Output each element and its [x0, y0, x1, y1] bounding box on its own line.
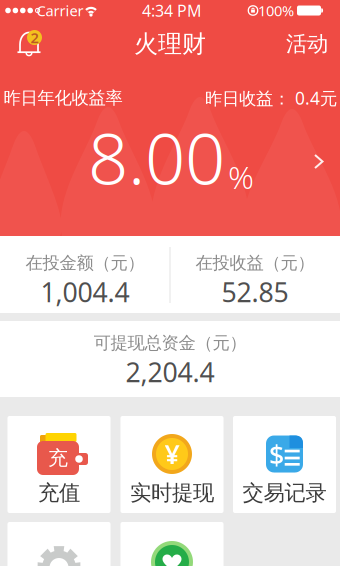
staticText: 2 — [30, 28, 38, 47]
button[interactable]: 设置 — [7, 522, 110, 566]
staticText: 在投收益（元） — [195, 252, 314, 274]
button[interactable]: 充 — [7, 416, 110, 513]
staticText: 实时提现 — [130, 480, 214, 506]
staticText: % — [228, 155, 254, 198]
staticText: 2,204.4 — [125, 354, 214, 390]
staticText: Carrier — [36, 1, 83, 20]
staticText: ¥ — [164, 436, 179, 472]
button[interactable]: 通知 — [5, 24, 49, 60]
button[interactable]: 收益详情 — [0, 113, 340, 203]
staticText: 在投金额（元） — [25, 252, 144, 274]
staticText: 交易记录 — [242, 480, 326, 506]
button[interactable]: 活动 — [282, 29, 332, 59]
staticText: 52.85 — [221, 274, 288, 310]
staticText: 昨日年化收益率 — [3, 87, 122, 109]
staticText: 1,004.4 — [40, 274, 129, 310]
button[interactable]: ¥ — [120, 416, 223, 513]
button[interactable]: $ — [233, 416, 336, 513]
staticText: 4:34 PM — [142, 0, 202, 21]
staticText: 可提现总资金（元） — [93, 332, 246, 354]
button[interactable]: 邀请好友 — [120, 522, 223, 566]
staticText: 8.00 — [88, 110, 225, 204]
staticText: 充 — [48, 446, 68, 470]
staticText: 昨日收益： 0.4元 — [205, 86, 337, 109]
staticText: 充值 — [38, 480, 80, 506]
staticText: 火理财 — [134, 29, 206, 59]
staticText: $ — [269, 437, 284, 473]
staticText: 活动 — [286, 31, 328, 57]
staticText: 100% — [258, 1, 294, 20]
